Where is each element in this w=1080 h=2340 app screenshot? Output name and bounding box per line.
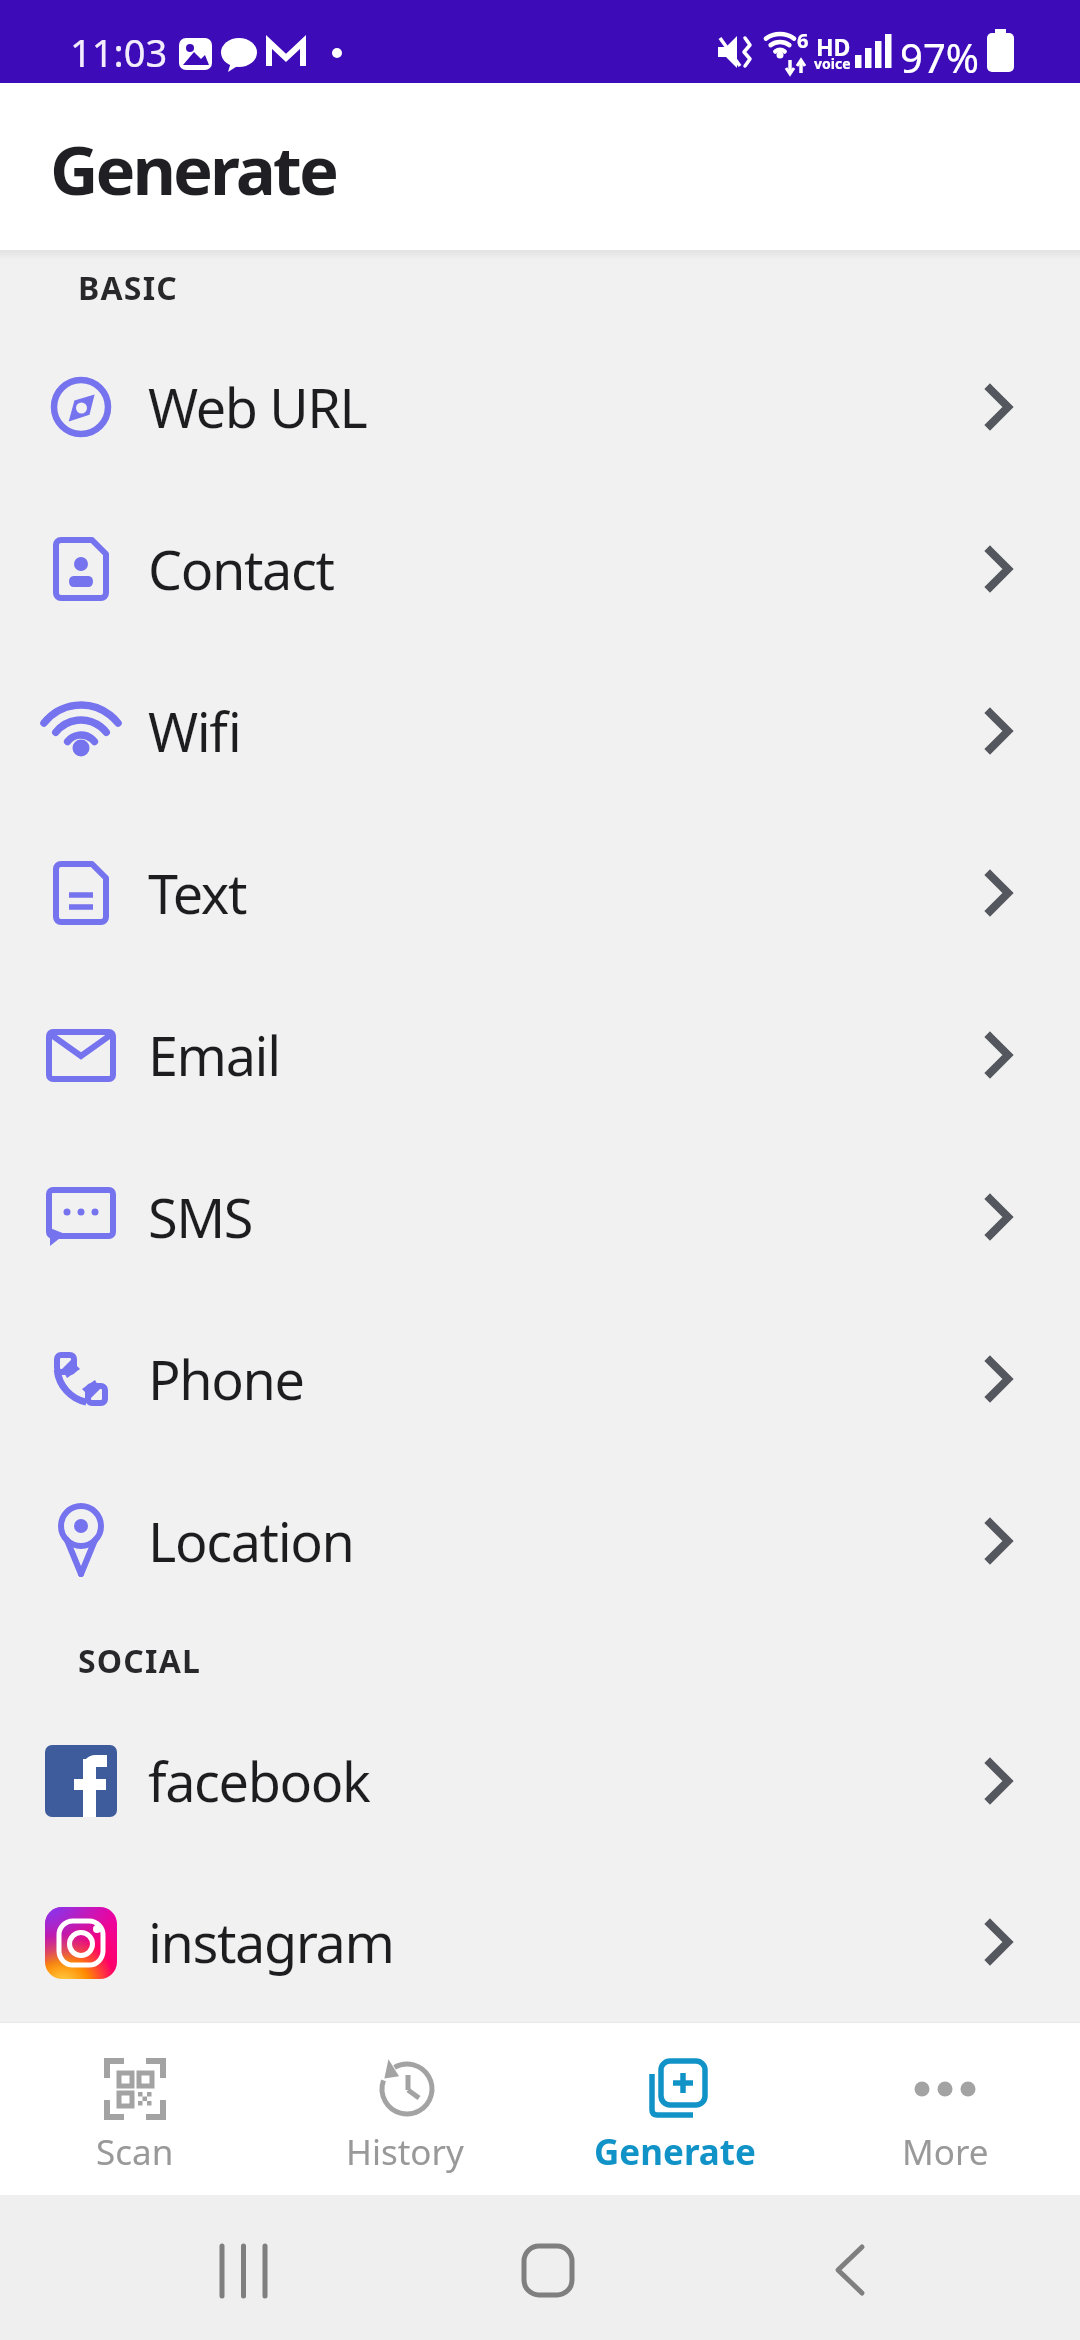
button[interactable]: History bbox=[270, 2022, 540, 2195]
staticText: Generate bbox=[50, 123, 336, 214]
staticText: More bbox=[902, 2128, 989, 2176]
staticText: BASIC bbox=[78, 266, 179, 310]
staticText: Phone bbox=[148, 1342, 976, 1416]
button[interactable]: Generate bbox=[540, 2022, 810, 2195]
button[interactable]: instagram bbox=[0, 1862, 1080, 2022]
button[interactable]: Contact bbox=[0, 488, 1080, 650]
staticText: facebook bbox=[148, 1744, 976, 1818]
button[interactable]: SMS bbox=[0, 1136, 1080, 1298]
button[interactable]: facebook bbox=[0, 1700, 1080, 1862]
button[interactable]: Phone bbox=[0, 1298, 1080, 1460]
staticText: 6 bbox=[797, 27, 809, 54]
staticText: SMS bbox=[148, 1180, 976, 1254]
staticText: Email bbox=[148, 1018, 976, 1092]
button[interactable]: Wifi bbox=[0, 650, 1080, 812]
button[interactable]: More bbox=[810, 2022, 1080, 2195]
button[interactable]: Email bbox=[0, 974, 1080, 1136]
staticText: voice bbox=[814, 54, 851, 73]
staticText: Location bbox=[148, 1504, 976, 1578]
staticText: SOCIAL bbox=[78, 1639, 202, 1683]
button[interactable]: Web URL bbox=[0, 326, 1080, 488]
staticText: HD bbox=[816, 31, 851, 62]
staticText: History bbox=[346, 2128, 464, 2176]
staticText: Generate bbox=[594, 2128, 756, 2176]
staticText: Wifi bbox=[148, 694, 976, 768]
staticText: 11:03 bbox=[70, 26, 168, 78]
staticText: Contact bbox=[148, 532, 976, 606]
button[interactable]: Text bbox=[0, 812, 1080, 974]
staticText: Text bbox=[148, 856, 976, 930]
staticText: Scan bbox=[96, 2128, 174, 2176]
button[interactable]: Scan bbox=[0, 2022, 270, 2195]
button[interactable]: Location bbox=[0, 1460, 1080, 1622]
staticText: 97% bbox=[900, 30, 979, 84]
staticText: instagram bbox=[148, 1905, 976, 1979]
staticText: Web URL bbox=[148, 370, 976, 444]
